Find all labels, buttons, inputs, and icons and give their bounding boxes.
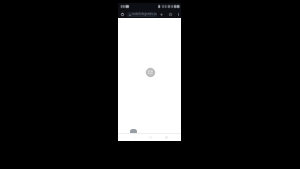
button[interactable]: Share [159,12,164,17]
button[interactable]: More options [176,12,181,17]
button[interactable]: Recent apps [163,134,170,141]
button[interactable]: Home [147,134,154,141]
button[interactable]: Tabs [168,12,173,17]
button[interactable] [130,129,137,133]
button[interactable]: Incognito [120,12,125,17]
button[interactable]: mobilelegends.com [127,12,157,17]
staticText: mobilelegends.com [132,12,157,17]
